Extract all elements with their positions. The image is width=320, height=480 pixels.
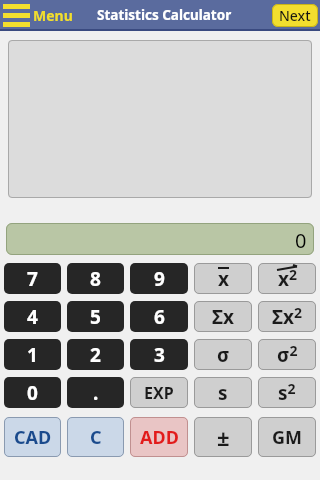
button[interactable]: 4 xyxy=(4,301,61,332)
button[interactable]: Next xyxy=(272,4,318,27)
button[interactable]: GM xyxy=(258,417,316,457)
button[interactable]: . xyxy=(67,377,124,408)
staticText: σ2 xyxy=(277,341,298,368)
staticText: Σx2 xyxy=(272,303,302,330)
staticText: x xyxy=(218,266,229,292)
button[interactable]: 3 xyxy=(130,339,188,370)
staticText: ADD xyxy=(140,425,179,450)
staticText: Menu xyxy=(33,6,73,25)
staticText: 5 xyxy=(90,304,101,330)
button[interactable]: Menu xyxy=(0,4,73,27)
staticText: . xyxy=(93,380,99,406)
staticText: 1 xyxy=(27,342,38,368)
staticText: C xyxy=(90,425,102,450)
staticText: 0 xyxy=(295,227,307,254)
button[interactable]: x2 xyxy=(258,263,316,294)
staticText: 3 xyxy=(154,342,165,368)
button[interactable]: ± xyxy=(194,417,252,457)
button[interactable]: 5 xyxy=(67,301,124,332)
button[interactable]: C xyxy=(67,417,124,457)
staticText: 0 xyxy=(27,380,38,406)
staticText: s xyxy=(218,380,228,406)
staticText: 4 xyxy=(27,304,38,330)
staticText: x2 xyxy=(278,265,297,292)
staticText: 7 xyxy=(27,266,38,292)
button[interactable]: CAD xyxy=(4,417,61,457)
button[interactable]: 6 xyxy=(130,301,188,332)
button[interactable]: 2 xyxy=(67,339,124,370)
staticText: s2 xyxy=(278,379,296,406)
button[interactable]: s2 xyxy=(258,377,316,408)
button[interactable]: EXP xyxy=(130,377,188,408)
button[interactable]: 0 xyxy=(4,377,61,408)
button[interactable]: Σx xyxy=(194,301,252,332)
button[interactable]: Σx2 xyxy=(258,301,316,332)
button[interactable]: s xyxy=(194,377,252,408)
button[interactable]: 9 xyxy=(130,263,188,294)
button[interactable]: 7 xyxy=(4,263,61,294)
button[interactable]: σ2 xyxy=(258,339,316,370)
staticText: Statistics Calculator xyxy=(97,6,232,24)
staticText: EXP xyxy=(144,382,174,404)
button[interactable]: x xyxy=(194,263,252,294)
staticText: σ xyxy=(217,342,230,368)
staticText: Σx xyxy=(212,304,234,330)
staticText: 6 xyxy=(154,304,165,330)
staticText: ± xyxy=(217,422,230,452)
staticText: 2 xyxy=(90,342,101,368)
staticText: 8 xyxy=(90,266,101,292)
staticText: CAD xyxy=(14,425,52,450)
button[interactable]: σ xyxy=(194,339,252,370)
staticText: GM xyxy=(272,425,303,450)
staticText: 9 xyxy=(154,266,165,292)
staticText: Next xyxy=(279,6,311,25)
button[interactable]: ADD xyxy=(130,417,188,457)
button[interactable]: 1 xyxy=(4,339,61,370)
button[interactable]: 8 xyxy=(67,263,124,294)
